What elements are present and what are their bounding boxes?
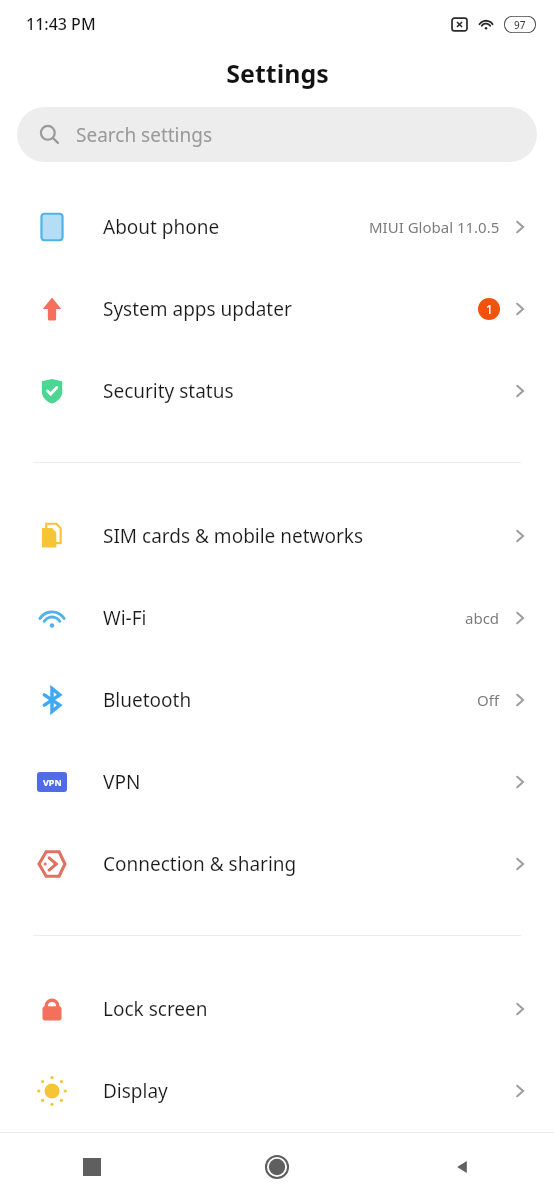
staticText: About phone (103, 214, 220, 240)
staticText: 11:43 PM (26, 13, 96, 35)
staticText: Settings (226, 56, 329, 90)
staticText: Bluetooth (103, 687, 192, 713)
staticText: SIM cards & mobile networks (103, 523, 364, 549)
staticText: 97 (514, 18, 526, 32)
staticText: Search settings (76, 122, 213, 148)
button[interactable]: Display (0, 1050, 554, 1132)
staticText: abcd (465, 608, 500, 628)
staticText: MIUI Global 11.0.5 (369, 217, 500, 237)
button[interactable]: SIM cards & mobile networks (0, 495, 554, 577)
staticText: VPN (103, 769, 141, 795)
button[interactable]: Recent apps (0, 1133, 184, 1200)
button[interactable]: Search settings (17, 107, 537, 162)
staticText: Off (477, 690, 500, 710)
staticText: Wi-Fi (103, 605, 147, 631)
button[interactable]: Lock screen (0, 968, 554, 1050)
staticText: System apps updater (103, 296, 292, 322)
button[interactable]: Home (184, 1133, 369, 1200)
staticText: 1 (486, 301, 493, 317)
button[interactable]: System apps updater (0, 268, 554, 350)
button[interactable]: Security status (0, 350, 554, 432)
staticText: Display (103, 1078, 168, 1104)
button[interactable]: Back (369, 1133, 554, 1200)
button[interactable]: Wi-Fi (0, 577, 554, 659)
button[interactable]: VPN (0, 741, 554, 823)
button[interactable]: Connection & sharing (0, 823, 554, 905)
staticText: Lock screen (103, 996, 208, 1022)
button[interactable]: About phone (0, 186, 554, 268)
staticText: VPN (43, 776, 62, 788)
staticText: Connection & sharing (103, 851, 297, 877)
button[interactable]: Bluetooth (0, 659, 554, 741)
staticText: Security status (103, 378, 234, 404)
